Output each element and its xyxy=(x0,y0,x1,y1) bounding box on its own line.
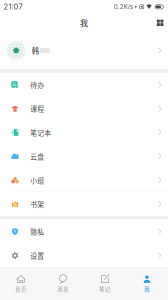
staticText: 韩 xyxy=(32,45,39,56)
button[interactable]: Scan QR code xyxy=(152,15,168,31)
button[interactable]: 首页 xyxy=(0,268,42,300)
button[interactable]: 韩 xyxy=(0,32,168,69)
staticText: 隐私 xyxy=(30,227,44,236)
staticText: 0.2K/s xyxy=(114,3,133,10)
staticText: 消息 xyxy=(57,285,69,293)
staticText: 笔记 xyxy=(99,285,111,293)
button[interactable]: 待办 xyxy=(0,73,168,97)
button[interactable]: 我 xyxy=(126,268,168,300)
button[interactable]: 隐私 xyxy=(0,219,168,243)
staticText: 我 xyxy=(144,285,150,293)
staticText: 21:07 xyxy=(3,2,22,11)
staticText: 我 xyxy=(80,17,88,29)
staticText: 云盘 xyxy=(30,151,44,161)
button[interactable]: 云盘 xyxy=(0,144,168,168)
button[interactable]: 书架 xyxy=(0,192,168,216)
button[interactable]: 小组 xyxy=(0,168,168,192)
staticText: 首页 xyxy=(15,285,27,293)
staticText: 设置 xyxy=(30,251,44,260)
staticText: 待办 xyxy=(30,80,44,90)
staticText: 课程 xyxy=(30,104,44,113)
staticText: 小组 xyxy=(30,175,44,185)
staticText: 书架 xyxy=(30,199,44,209)
button[interactable]: 笔记 xyxy=(84,268,126,300)
button[interactable]: 课程 xyxy=(0,97,168,121)
staticText: 笔记本 xyxy=(30,128,51,137)
button[interactable]: 笔记本 xyxy=(0,120,168,144)
button[interactable]: 消息 xyxy=(42,268,84,300)
button[interactable]: 设置 xyxy=(0,243,168,267)
